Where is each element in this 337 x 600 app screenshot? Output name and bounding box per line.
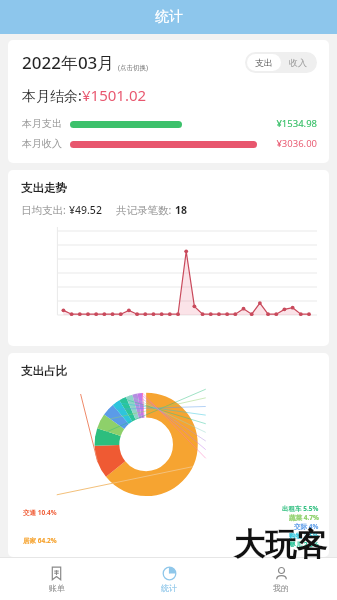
button[interactable]: 收入 — [281, 54, 315, 71]
staticText: 共记录笔数: — [116, 203, 175, 217]
staticText: 18 — [175, 203, 188, 217]
staticText: 交际 4% — [294, 522, 319, 531]
staticText: 统计 — [155, 8, 183, 26]
button[interactable]: 2022年03月 — [22, 51, 148, 74]
staticText: ¥1534.98 — [263, 117, 317, 130]
staticText: (点击切换) — [118, 63, 148, 72]
staticText: 居家 64.2% — [23, 536, 57, 545]
staticText: ¥3036.00 — [263, 137, 317, 150]
staticText: 支出 — [255, 57, 273, 68]
staticText: 本月结余: — [22, 86, 82, 105]
button[interactable]: 账单 — [0, 558, 113, 600]
staticText: 本月支出 — [22, 117, 62, 130]
staticText: 婴儿 2.3% — [289, 540, 319, 547]
button[interactable]: 支出 — [247, 54, 281, 71]
staticText: 2022年03月 — [22, 51, 115, 74]
button[interactable]: 统计 — [113, 558, 225, 600]
staticText: 大玩客 — [234, 525, 327, 564]
staticText: 本月收入 — [22, 137, 62, 150]
staticText: 统计 — [161, 583, 177, 593]
staticText: 蔬菜 4.7% — [289, 513, 319, 522]
staticText: 我的 — [273, 583, 289, 593]
staticText: 支出占比 — [21, 364, 67, 378]
staticText: 收入 — [289, 57, 307, 68]
staticText: 账单 — [49, 583, 65, 593]
staticText: 支出走势 — [21, 181, 67, 195]
staticText: 出租车 5.5% — [282, 504, 319, 513]
staticText: 交通 10.4% — [23, 508, 57, 517]
staticText: 日均支出: — [21, 203, 69, 217]
staticText: ¥1501.02 — [82, 85, 147, 105]
staticText: ¥49.52 — [69, 203, 102, 217]
button[interactable]: 我的 — [225, 558, 337, 600]
staticText: 购物 2.5% — [289, 531, 319, 540]
